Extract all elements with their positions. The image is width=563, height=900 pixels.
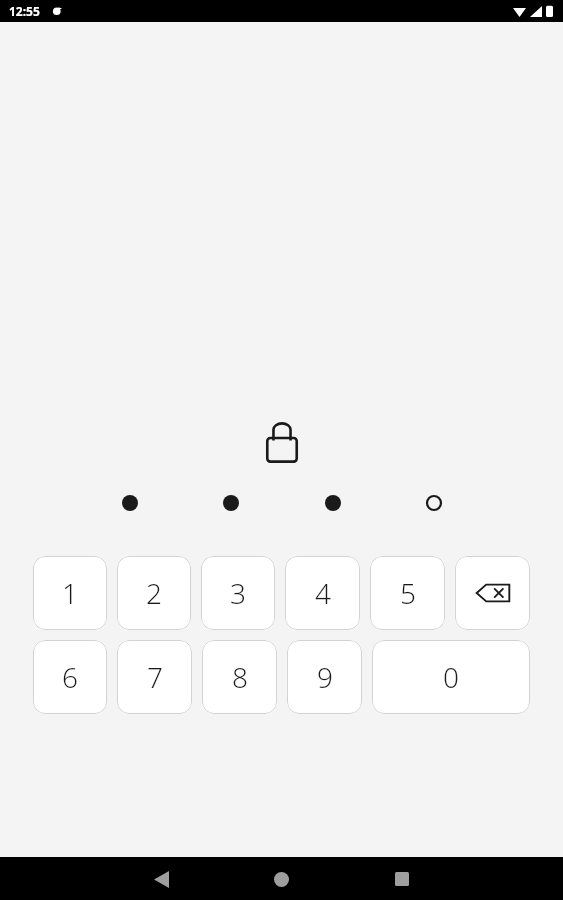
staticText: 12:55 xyxy=(9,3,40,19)
button[interactable]: 3 xyxy=(201,556,275,630)
button[interactable]: Home xyxy=(261,859,301,899)
button[interactable]: 4 xyxy=(285,556,360,630)
button[interactable]: 8 xyxy=(202,640,277,714)
staticText: 6 xyxy=(62,658,78,696)
staticText: 5 xyxy=(400,574,416,612)
button[interactable]: 9 xyxy=(287,640,362,714)
button[interactable]: 1 xyxy=(33,556,107,630)
button[interactable]: 5 xyxy=(370,556,445,630)
staticText: 8 xyxy=(232,658,248,696)
staticText: 7 xyxy=(147,658,163,696)
button[interactable]: 6 xyxy=(33,640,107,714)
button[interactable]: 2 xyxy=(117,556,191,630)
other: Locked xyxy=(266,422,298,462)
staticText: 9 xyxy=(317,658,333,696)
staticText: 1 xyxy=(62,574,78,612)
button[interactable]: 7 xyxy=(117,640,192,714)
button[interactable]: Backspace xyxy=(455,556,530,630)
button[interactable]: Back xyxy=(141,859,181,899)
staticText: 2 xyxy=(146,574,162,612)
button[interactable]: Recent apps xyxy=(382,859,422,899)
button[interactable]: 0 xyxy=(372,640,530,714)
staticText: 3 xyxy=(230,574,246,612)
staticText: 0 xyxy=(443,658,459,696)
staticText: 4 xyxy=(315,574,331,612)
